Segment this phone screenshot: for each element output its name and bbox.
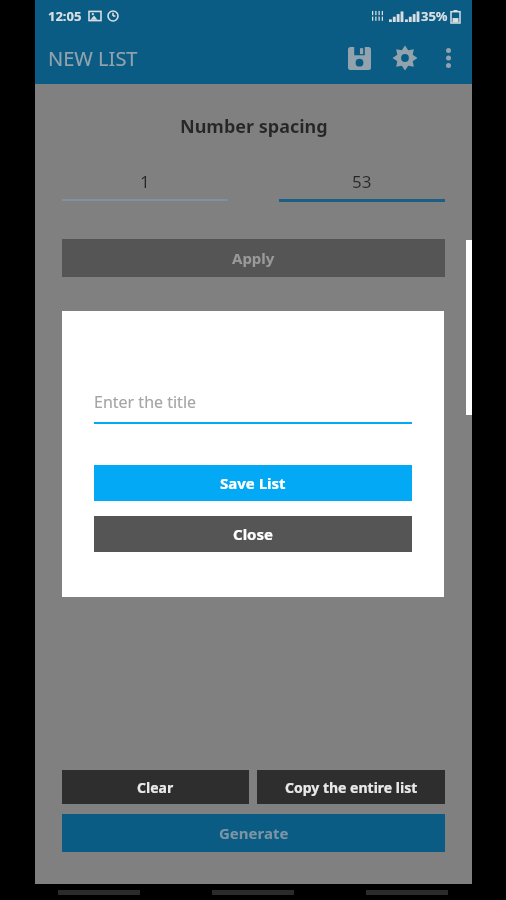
staticText: Number spacing — [180, 114, 328, 139]
staticText: 53 — [352, 170, 372, 193]
button[interactable]: Copy the entire list — [257, 770, 445, 804]
staticText: Copy the entire list — [285, 778, 418, 797]
button[interactable]: Settings — [382, 35, 428, 81]
staticText: NEW LIST — [48, 45, 138, 72]
button[interactable]: Generate — [62, 814, 445, 852]
button[interactable]: Apply — [62, 239, 445, 277]
staticText: Enter the title — [94, 391, 197, 413]
staticText: 12:05 — [48, 7, 82, 25]
staticText: Apply — [232, 248, 275, 268]
staticText: 35% — [421, 7, 448, 25]
staticText: Save List — [220, 473, 286, 493]
button[interactable]: 1 — [62, 170, 228, 201]
button[interactable]: Save List — [94, 465, 412, 501]
button[interactable]: Clear — [62, 770, 249, 804]
button[interactable]: Enter the title — [94, 391, 412, 424]
button[interactable]: Save — [336, 35, 382, 81]
button[interactable]: Close — [94, 516, 412, 552]
staticText: Close — [233, 524, 273, 544]
button[interactable]: 53 — [279, 170, 445, 202]
staticText: Generate — [219, 823, 289, 843]
button[interactable]: More options — [428, 38, 468, 78]
staticText: Clear — [137, 778, 174, 797]
staticText: 1 — [140, 170, 150, 193]
